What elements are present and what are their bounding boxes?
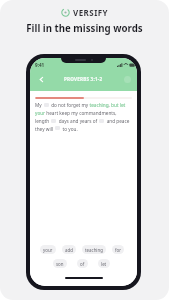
staticText: VERSIFY [73,7,108,18]
staticText: 9:41 [35,62,45,68]
staticText: My _ do not forget my teaching, but let … [35,102,130,132]
button[interactable]: Bookmark [121,73,133,85]
staticText: Fill in the missing words [0,22,169,35]
staticText: teaching [85,247,103,253]
staticText: son [56,261,64,267]
button[interactable]: of [77,259,88,268]
staticText: let [101,261,107,267]
button[interactable]: Back [35,73,47,85]
button[interactable]: let [98,259,110,268]
staticText: of [80,261,85,267]
staticText: your [43,247,53,253]
button[interactable]: son [53,259,67,268]
button[interactable]: teaching [82,245,106,254]
staticText: for [115,247,121,253]
staticText: add [65,247,73,253]
button[interactable]: add [62,245,76,254]
staticText: PROVERBS 3:1-2 [64,76,103,82]
button[interactable]: for [112,245,124,254]
button[interactable]: your [40,245,56,254]
